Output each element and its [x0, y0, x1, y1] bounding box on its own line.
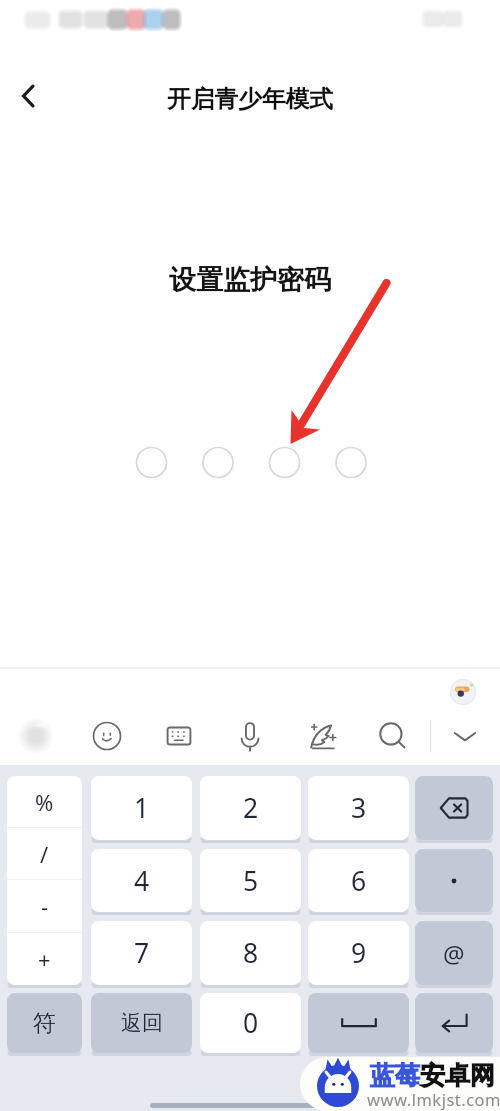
button[interactable]: Keyboard layout [155, 712, 203, 760]
button[interactable]: Sticker pack [447, 676, 479, 708]
button[interactable]: + [7, 933, 82, 985]
staticText: 4 [134, 863, 150, 899]
staticText: - [41, 891, 49, 921]
staticText: 7 [134, 935, 150, 971]
staticText: 安卓网 [420, 1060, 495, 1091]
button[interactable]: 9 [308, 921, 409, 985]
staticText: 蓝莓 [370, 1060, 420, 1091]
staticText: 2 [243, 790, 259, 826]
staticText: 0 [243, 1005, 259, 1041]
staticText: @ [443, 937, 465, 970]
button[interactable]: Voice input [226, 712, 274, 760]
button[interactable]: 2 [200, 776, 301, 840]
staticText: + [38, 944, 51, 974]
button[interactable]: Hide keyboard [441, 712, 489, 760]
button[interactable]: Search [369, 712, 417, 760]
button[interactable]: % [7, 776, 82, 827]
staticText: 1 [134, 790, 150, 826]
staticText: % [35, 787, 54, 817]
staticText: 返回 [121, 1010, 163, 1036]
staticText: www.lmkjst.com [367, 1088, 500, 1110]
button[interactable]: / [7, 828, 82, 879]
button[interactable]: 0 [200, 993, 301, 1053]
staticText: / [40, 839, 49, 869]
button[interactable] [415, 849, 493, 912]
button[interactable]: 4 [91, 849, 192, 912]
button[interactable]: 1 [91, 776, 192, 840]
button[interactable]: Emoji [83, 712, 131, 760]
button[interactable]: Input method logo [10, 708, 64, 762]
button[interactable]: 返回 [91, 993, 192, 1053]
button[interactable] [415, 993, 493, 1053]
button[interactable]: Back [6, 74, 50, 118]
staticText: 9 [351, 935, 367, 971]
staticText: 设置监护密码 [0, 263, 500, 297]
button[interactable]: 5 [200, 849, 301, 912]
button[interactable]: 6 [308, 849, 409, 912]
button[interactable]: @ [415, 921, 493, 985]
button[interactable]: 8 [200, 921, 301, 985]
button[interactable]: 7 [91, 921, 192, 985]
staticText: 6 [351, 863, 367, 899]
button[interactable]: Handwriting [298, 712, 346, 760]
button[interactable]: - [7, 880, 82, 932]
button[interactable]: 符 [7, 993, 82, 1053]
button[interactable] [308, 993, 409, 1053]
button[interactable]: 3 [308, 776, 409, 840]
button[interactable] [415, 776, 493, 840]
staticText: 8 [243, 935, 259, 971]
staticText: 5 [243, 863, 259, 899]
staticText: 3 [351, 790, 367, 826]
staticText: 开启青少年模式 [0, 84, 500, 114]
staticText: 符 [33, 1009, 56, 1038]
